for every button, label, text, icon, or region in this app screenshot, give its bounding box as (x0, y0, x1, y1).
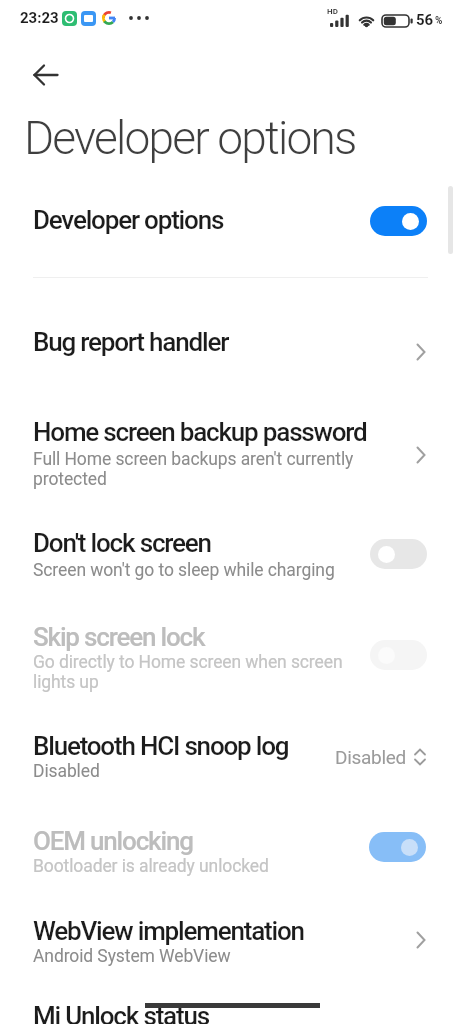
staticText: Don't lock screen (33, 528, 211, 558)
staticText: protected (33, 469, 107, 490)
staticText: WebView implementation (33, 916, 304, 946)
staticText: Bug report handler (33, 327, 229, 357)
button[interactable]: Don't lock screen (0, 519, 461, 585)
staticText: Go directly to Home screen when screen (33, 652, 343, 673)
staticText: Bluetooth HCI snoop log (33, 731, 289, 761)
button[interactable]: Skip screen lock (0, 611, 461, 697)
button[interactable]: Developer options (0, 183, 461, 253)
staticText: Screen won't go to sleep while charging (33, 560, 335, 581)
staticText: Mi Unlock status (33, 1001, 209, 1024)
staticText: Disabled (33, 761, 100, 782)
staticText: Disabled (335, 746, 406, 768)
staticText: HD (327, 7, 338, 16)
staticText: Bootloader is already unlocked (33, 856, 269, 877)
staticText: Home screen backup password (33, 417, 367, 447)
button[interactable] (24, 56, 68, 96)
staticText: Full Home screen backups aren't currentl… (33, 449, 354, 470)
staticText: Skip screen lock (33, 622, 205, 652)
button[interactable] (369, 832, 426, 862)
button[interactable] (370, 640, 427, 670)
staticText: % (435, 15, 443, 27)
button[interactable]: OEM unlocking (0, 817, 461, 883)
staticText: 23:23 (20, 9, 59, 27)
button[interactable] (370, 206, 427, 236)
button[interactable]: Bug report handler (0, 307, 461, 371)
button[interactable] (370, 539, 427, 569)
button[interactable]: Mi Unlock status (0, 996, 461, 1024)
staticText: Developer options (33, 205, 224, 235)
button[interactable]: Home screen backup password (0, 405, 461, 497)
staticText: lights up (33, 672, 99, 693)
staticText: Developer options (24, 111, 356, 165)
button[interactable]: Bluetooth HCI snoop log (0, 721, 461, 787)
staticText: Android System WebView (33, 946, 231, 967)
staticText: 56 (416, 11, 434, 29)
button[interactable]: WebView implementation (0, 907, 461, 973)
staticText: OEM unlocking (33, 826, 193, 856)
